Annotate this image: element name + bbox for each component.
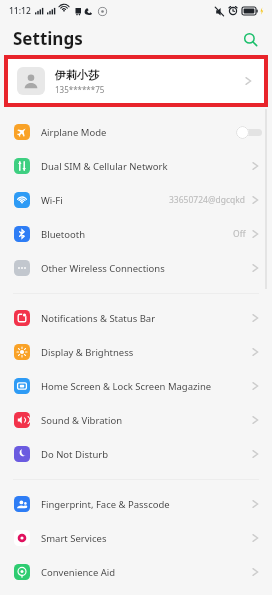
button[interactable]: Fingerprint, Face & Passcode: [0, 487, 272, 521]
button[interactable]: Sound & Vibration: [0, 403, 272, 437]
button[interactable]: Smart Services: [0, 521, 272, 555]
staticText: 11:12: [9, 5, 31, 17]
staticText: Do Not Disturb: [41, 448, 250, 461]
staticText: Bluetooth: [41, 228, 233, 241]
staticText: Dual SIM & Cellular Network: [41, 160, 250, 173]
button[interactable]: Display & Brightness: [0, 335, 272, 369]
staticText: Home Screen & Lock Screen Magazine: [41, 380, 250, 393]
button[interactable]: Convenience Aid: [0, 555, 272, 589]
staticText: Airplane Mode: [41, 126, 236, 139]
button[interactable]: Search: [239, 28, 261, 50]
button[interactable]: Other Wireless Connections: [0, 251, 272, 285]
staticText: Fingerprint, Face & Passcode: [41, 498, 250, 511]
staticText: Convenience Aid: [41, 566, 250, 579]
staticText: Notifications & Status Bar: [41, 312, 250, 325]
staticText: 135******75: [55, 84, 105, 95]
button[interactable]: Notifications & Status Bar: [0, 301, 272, 335]
button[interactable]: Bluetooth: [0, 217, 272, 251]
button[interactable]: Dual SIM & Cellular Network: [0, 149, 272, 183]
staticText: 伊莉小莎: [55, 68, 99, 82]
staticText: Settings: [13, 27, 83, 50]
button[interactable]: Home Screen & Lock Screen Magazine: [0, 369, 272, 403]
staticText: 33650724@dgcqkd: [169, 194, 246, 206]
staticText: Smart Services: [41, 532, 250, 545]
staticText: Sound & Vibration: [41, 414, 250, 427]
staticText: Other Wireless Connections: [41, 262, 250, 275]
button[interactable]: Do Not Disturb: [0, 437, 272, 471]
button[interactable]: 伊莉小莎: [8, 59, 264, 103]
button[interactable]: Airplane Mode: [0, 115, 272, 149]
staticText: Wi-Fi: [41, 194, 169, 207]
staticText: Off: [233, 228, 246, 240]
button[interactable]: Wi-Fi: [0, 183, 272, 217]
staticText: Display & Brightness: [41, 346, 250, 359]
